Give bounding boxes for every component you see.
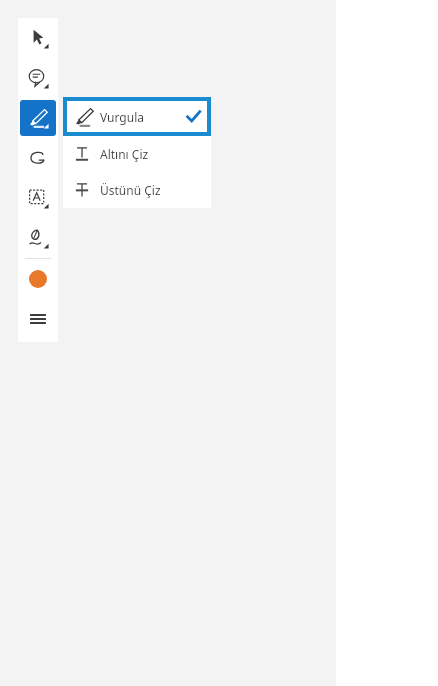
staticText: Vurgula (100, 109, 144, 125)
staticText: Altını Çiz (100, 146, 149, 162)
button[interactable]: Sign (20, 220, 56, 256)
staticText: Üstünü Çiz (100, 182, 161, 198)
button[interactable]: Select (20, 20, 56, 56)
button[interactable]: Altını Çiz (63, 136, 211, 172)
button[interactable]: Text select (20, 180, 56, 216)
button[interactable]: Vurgula (63, 97, 211, 136)
button[interactable]: Comment (20, 60, 56, 96)
button[interactable]: Üstünü Çiz (63, 172, 211, 208)
button[interactable]: Highlight (20, 100, 56, 136)
button[interactable]: More options (20, 301, 56, 337)
button[interactable]: Shapes (20, 140, 56, 176)
button[interactable]: Color (20, 261, 56, 297)
